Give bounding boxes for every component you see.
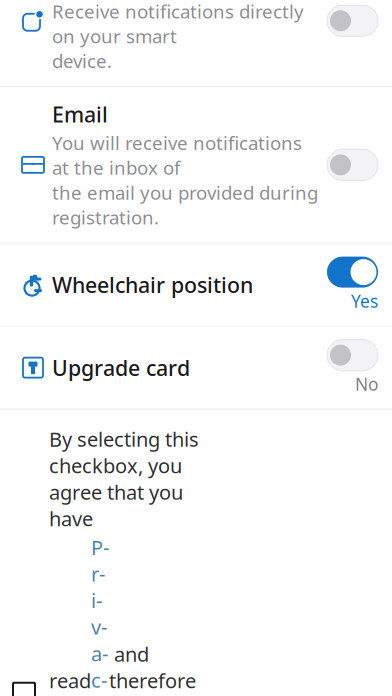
staticText: Email xyxy=(52,100,108,128)
button[interactable]: Wheelchair position xyxy=(0,244,392,327)
staticText: Upgrade card xyxy=(52,353,190,382)
staticText: Privacy Policy xyxy=(91,534,109,696)
staticText: and therefore consent to the xyxy=(109,641,207,696)
button[interactable]: Upgrade card xyxy=(0,327,392,410)
staticText: By selecting this checkbox, you agree th… xyxy=(49,426,199,532)
button[interactable]: Email xyxy=(0,87,392,244)
staticText: Yes xyxy=(351,290,378,313)
staticText: Wheelchair position xyxy=(52,270,253,299)
staticText: Receive notifications directly on your s… xyxy=(52,0,304,73)
staticText: read the xyxy=(49,667,91,696)
staticText: No xyxy=(355,373,378,396)
button[interactable]: Push xyxy=(0,0,392,87)
staticText: You will receive notifications at the in… xyxy=(52,130,318,230)
button[interactable]: By selecting this checkbox, you agree th… xyxy=(0,418,392,696)
